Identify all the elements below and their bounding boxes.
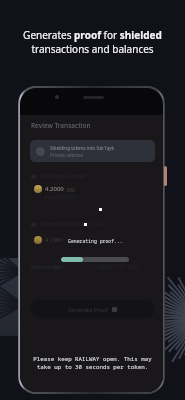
staticText: 4.2000 — [45, 185, 64, 193]
staticText: Private address — [50, 152, 84, 158]
staticText: 4.1991 — [45, 236, 64, 244]
staticText: DAI — [67, 187, 75, 193]
button[interactable]: Shielding tokens into 0zk1qyk — [30, 140, 155, 162]
other: Shield — [112, 307, 117, 312]
staticText: Fast — [55, 264, 65, 271]
button[interactable]: Generate Proof — [30, 300, 155, 318]
staticText: Network Fee — [31, 264, 61, 271]
staticText: 0zk1 address, private — [40, 173, 86, 179]
staticText: Review Transaction — [31, 121, 91, 130]
staticText: Shielding tokens into 0zk1qyk — [50, 145, 115, 151]
staticText: Shielded Public Balance 0zk — [40, 221, 102, 227]
staticText: Generates proof for shielded transaction… — [23, 28, 162, 56]
staticText: 0.00021 ETH $0.54 — [98, 264, 139, 270]
staticText: Generating proof... — [68, 238, 123, 245]
staticText: Please keep RAILWAY open. This may take … — [33, 355, 152, 370]
staticText: Generate Proof — [68, 306, 109, 313]
